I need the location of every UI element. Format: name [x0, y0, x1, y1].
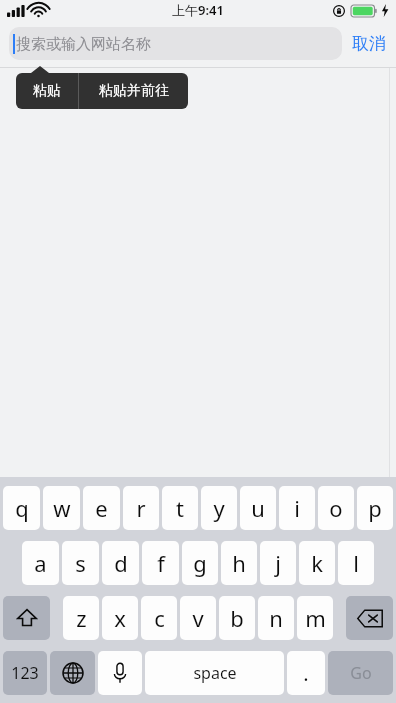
button[interactable]: Backspace: [346, 596, 393, 640]
staticText: space: [193, 662, 237, 684]
button[interactable]: Switch keyboard: [50, 651, 95, 695]
staticText: 123: [11, 662, 39, 684]
staticText: x: [114, 603, 126, 633]
staticText: f: [157, 548, 165, 578]
staticText: w: [53, 493, 71, 523]
button[interactable]: t: [162, 486, 198, 530]
button[interactable]: 粘贴并前往: [79, 73, 188, 109]
staticText: 上午9:41: [172, 1, 224, 19]
button[interactable]: space: [145, 651, 284, 695]
button[interactable]: o: [318, 486, 354, 530]
button[interactable]: c: [141, 596, 177, 640]
button[interactable]: n: [258, 596, 294, 640]
staticText: 粘贴: [33, 82, 61, 100]
button[interactable]: Shift: [3, 596, 50, 640]
button[interactable]: y: [201, 486, 237, 530]
button[interactable]: a: [22, 541, 59, 585]
button[interactable]: 123: [3, 651, 47, 695]
button[interactable]: h: [221, 541, 257, 585]
staticText: v: [192, 603, 204, 633]
button[interactable]: g: [182, 541, 218, 585]
staticText: r: [136, 493, 146, 523]
button[interactable]: d: [102, 541, 139, 585]
staticText: a: [34, 548, 47, 578]
staticText: 粘贴并前往: [99, 82, 169, 100]
button[interactable]: 搜索或输入网站名称: [9, 27, 342, 60]
button[interactable]: .: [287, 651, 325, 695]
staticText: t: [176, 493, 184, 523]
button[interactable]: b: [219, 596, 255, 640]
staticText: e: [95, 493, 108, 523]
staticText: Go: [350, 662, 372, 684]
staticText: c: [154, 603, 165, 633]
button[interactable]: j: [260, 541, 296, 585]
staticText: q: [15, 493, 29, 523]
button[interactable]: e: [83, 486, 120, 530]
staticText: o: [329, 493, 343, 523]
staticText: i: [294, 493, 300, 523]
button[interactable]: r: [123, 486, 159, 530]
button[interactable]: s: [62, 541, 99, 585]
button[interactable]: p: [357, 486, 393, 530]
staticText: d: [114, 548, 128, 578]
staticText: y: [213, 493, 225, 523]
staticText: h: [232, 548, 246, 578]
button[interactable]: Dictation: [98, 651, 142, 695]
button[interactable]: u: [240, 486, 276, 530]
button[interactable]: f: [142, 541, 179, 585]
button[interactable]: 粘贴: [16, 73, 78, 109]
button[interactable]: w: [43, 486, 80, 530]
button[interactable]: m: [297, 596, 333, 640]
staticText: j: [275, 548, 281, 578]
button[interactable]: x: [102, 596, 138, 640]
staticText: 取消: [352, 33, 386, 54]
button[interactable]: q: [3, 486, 40, 530]
staticText: n: [269, 603, 283, 633]
button[interactable]: Go: [328, 651, 393, 695]
staticText: l: [353, 548, 359, 578]
button[interactable]: 取消: [352, 33, 386, 54]
staticText: b: [230, 603, 244, 633]
staticText: m: [305, 603, 326, 633]
staticText: g: [193, 548, 207, 578]
staticText: z: [76, 603, 87, 633]
staticText: 搜索或输入网站名称: [16, 35, 151, 54]
staticText: s: [75, 548, 86, 578]
button[interactable]: z: [63, 596, 99, 640]
button[interactable]: i: [279, 486, 315, 530]
staticText: p: [368, 493, 382, 523]
button[interactable]: v: [180, 596, 216, 640]
staticText: u: [251, 493, 265, 523]
staticText: k: [311, 548, 323, 578]
staticText: .: [303, 660, 309, 687]
button[interactable]: k: [299, 541, 335, 585]
button[interactable]: l: [338, 541, 374, 585]
